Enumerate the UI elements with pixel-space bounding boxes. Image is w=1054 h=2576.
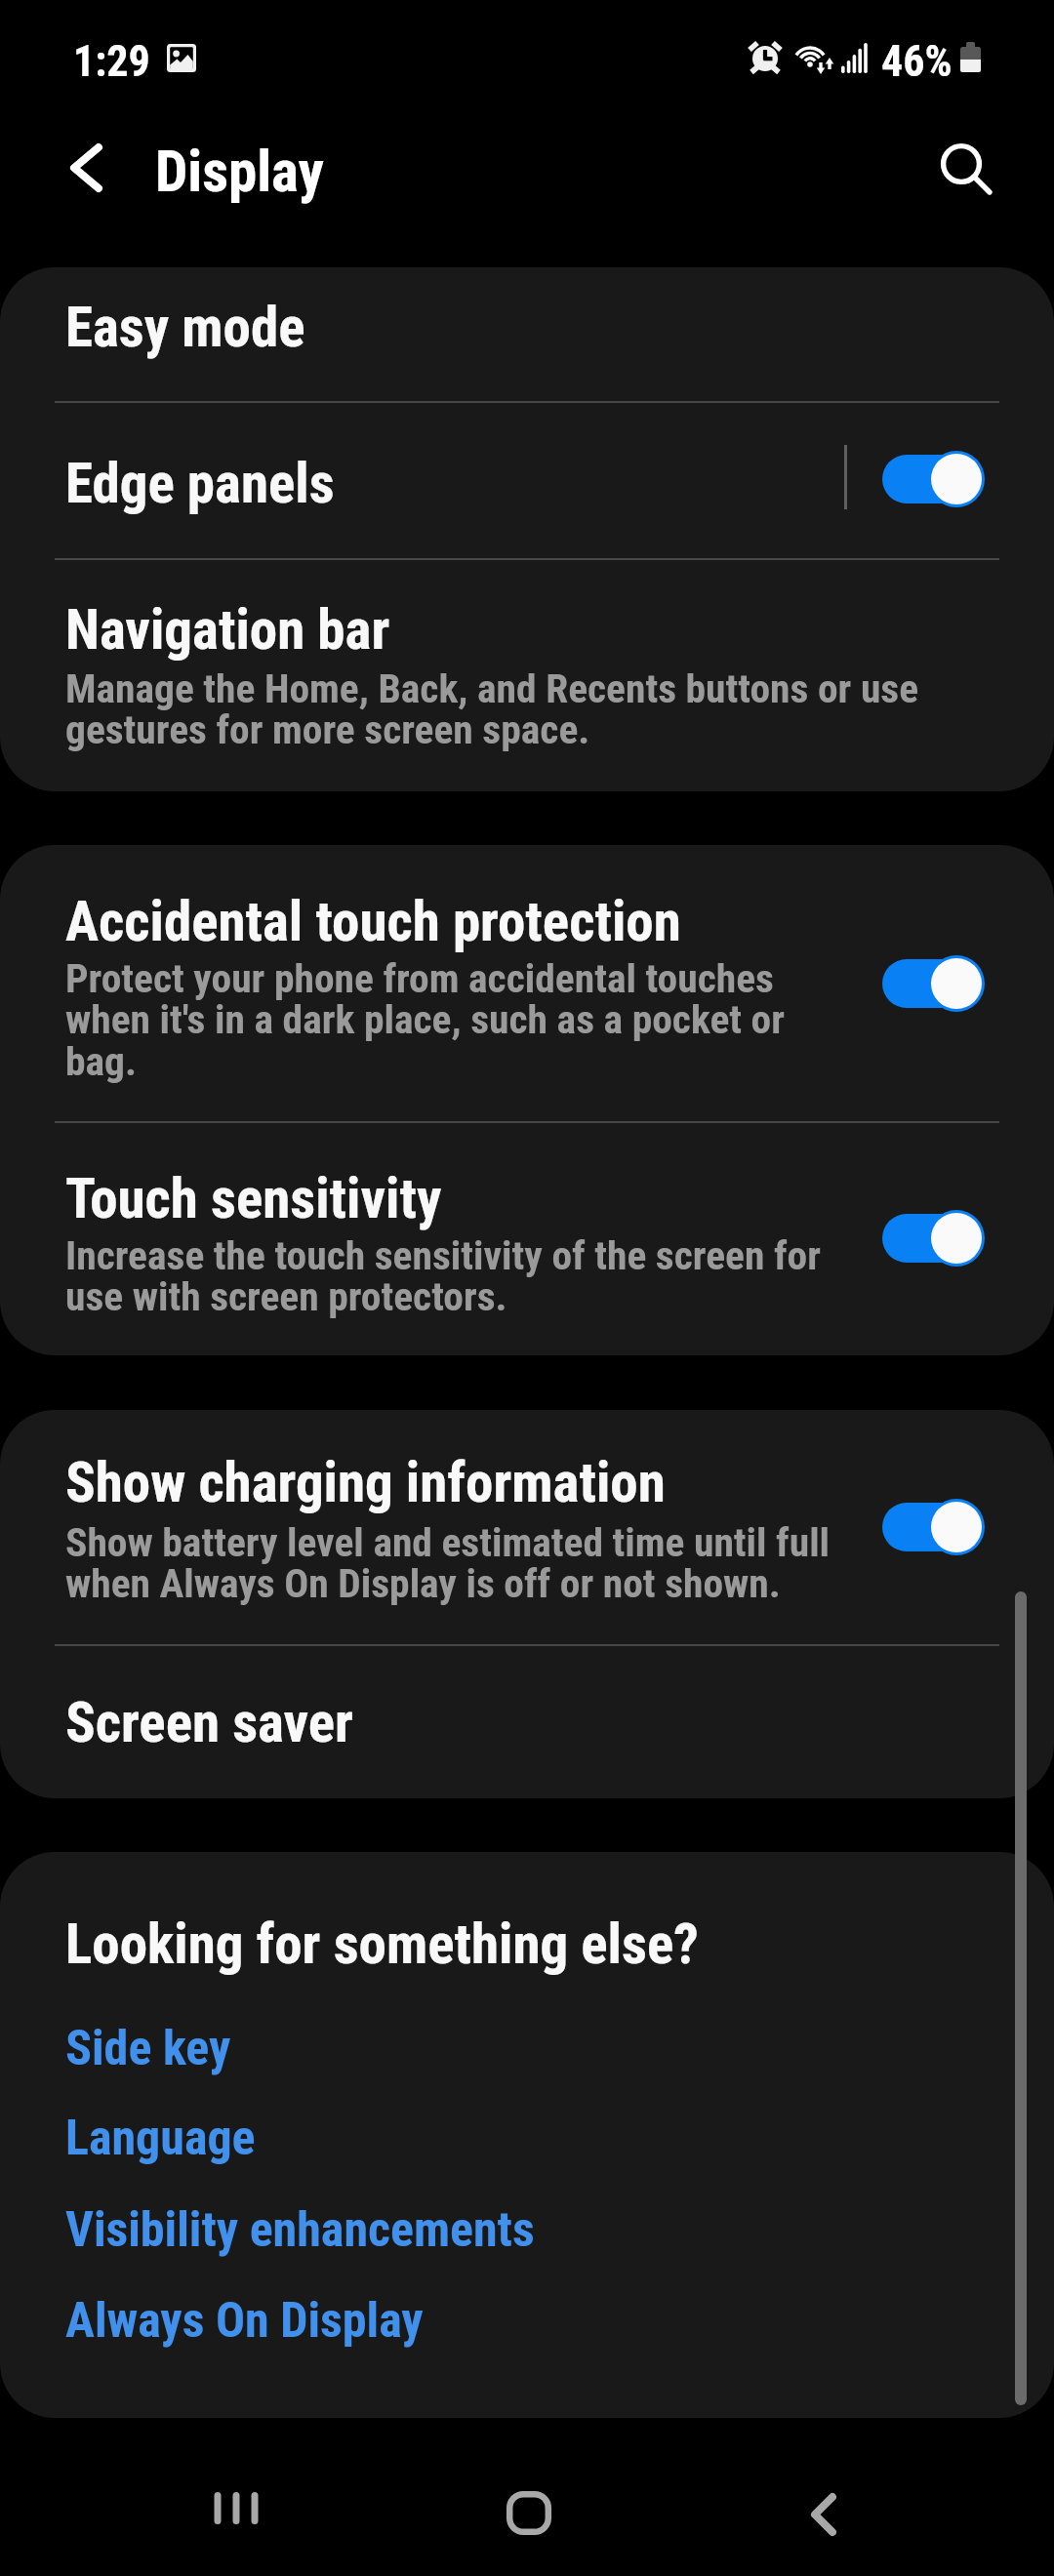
button[interactable]: Visibility enhancements bbox=[65, 2201, 535, 2259]
staticText: Easy mode bbox=[65, 295, 305, 360]
button[interactable] bbox=[0, 558, 1054, 791]
staticText: Navigation bar bbox=[65, 597, 390, 663]
button[interactable]: Navigate up bbox=[31, 113, 141, 222]
button[interactable]: Back bbox=[763, 2446, 884, 2576]
button[interactable] bbox=[0, 401, 1054, 558]
button[interactable] bbox=[0, 845, 1054, 1121]
staticText: Protect your phone from accidental touch… bbox=[65, 954, 846, 1085]
staticText: 46% bbox=[881, 36, 953, 87]
button[interactable] bbox=[0, 1121, 1054, 1355]
staticText: Display bbox=[155, 138, 324, 205]
button[interactable] bbox=[0, 267, 1054, 401]
staticText: Manage the Home, Back, and Recents butto… bbox=[65, 664, 993, 753]
button[interactable]: Recent apps bbox=[176, 2446, 297, 2576]
button[interactable]: Always On Display bbox=[65, 2292, 424, 2350]
staticText: 1:29 bbox=[73, 36, 150, 87]
staticText: Side key bbox=[65, 2020, 231, 2077]
staticText: Visibility enhancements bbox=[65, 2201, 535, 2259]
button[interactable]: Language bbox=[65, 2110, 256, 2167]
staticText: Show battery level and estimated time un… bbox=[65, 1518, 846, 1607]
button[interactable] bbox=[0, 1644, 1054, 1798]
staticText: Touch sensitivity bbox=[65, 1166, 442, 1231]
staticText: Accidental touch protection bbox=[65, 889, 681, 954]
staticText: Always On Display bbox=[65, 2292, 424, 2350]
staticText: Edge panels bbox=[65, 451, 335, 516]
staticText: Show charging information bbox=[65, 1450, 666, 1515]
button[interactable]: Side key bbox=[65, 2020, 231, 2077]
button[interactable]: Search bbox=[915, 115, 1025, 224]
staticText: Looking for something else? bbox=[65, 1912, 699, 1977]
staticText: Screen saver bbox=[65, 1690, 353, 1755]
button[interactable] bbox=[0, 1410, 1054, 1644]
staticText: Increase the touch sensitivity of the sc… bbox=[65, 1231, 846, 1320]
staticText: Language bbox=[65, 2110, 256, 2167]
button[interactable]: Home bbox=[468, 2446, 589, 2576]
